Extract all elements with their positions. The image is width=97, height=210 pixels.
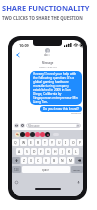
button[interactable]: Back bbox=[14, 51, 22, 59]
staticText: Y bbox=[51, 140, 53, 145]
staticText: X bbox=[30, 158, 32, 163]
button[interactable]: G bbox=[45, 148, 51, 155]
button[interactable]: T bbox=[42, 139, 48, 146]
button[interactable]: W bbox=[20, 139, 27, 146]
staticText: G bbox=[47, 149, 50, 154]
staticText: M bbox=[69, 158, 73, 163]
button[interactable]: Backspace bbox=[75, 157, 83, 164]
button[interactable]: App bbox=[20, 132, 25, 137]
staticText: A bbox=[18, 149, 21, 154]
staticText: U bbox=[58, 140, 61, 145]
button[interactable]: App store bbox=[20, 123, 25, 128]
staticText: K bbox=[68, 149, 71, 154]
button[interactable]: K bbox=[66, 148, 72, 155]
staticText: SHARE FUNCTIONALITY bbox=[2, 3, 90, 13]
button[interactable]: App bbox=[40, 132, 45, 137]
button[interactable]: R bbox=[35, 139, 41, 146]
staticText: TWO CLICKS TO SHARE THE QUESTION bbox=[2, 15, 83, 21]
button[interactable]: App bbox=[30, 132, 35, 137]
button[interactable]: X bbox=[28, 157, 34, 164]
staticText: J bbox=[62, 149, 63, 154]
button[interactable]: V bbox=[43, 157, 50, 164]
button[interactable]: App bbox=[45, 132, 50, 137]
button[interactable]: B bbox=[51, 157, 58, 164]
staticText: L bbox=[75, 149, 77, 154]
button[interactable]: Message bbox=[26, 123, 81, 128]
button[interactable]: Emoji bbox=[14, 180, 19, 185]
button[interactable]: J bbox=[59, 148, 65, 155]
staticText: Message bbox=[42, 61, 54, 65]
staticText: 123 bbox=[14, 168, 19, 172]
button[interactable]: A bbox=[16, 148, 23, 155]
staticText: W bbox=[22, 140, 26, 145]
staticText: T bbox=[44, 140, 46, 145]
staticText: abc › bbox=[44, 53, 51, 57]
button[interactable]: Q bbox=[12, 139, 19, 146]
button[interactable]: N bbox=[59, 157, 66, 164]
staticText: Message bbox=[28, 124, 40, 128]
staticText: P bbox=[79, 140, 82, 145]
button[interactable]: S bbox=[24, 148, 30, 155]
staticText: D bbox=[33, 149, 36, 154]
button[interactable]: Dictation bbox=[76, 180, 81, 185]
staticText: return bbox=[73, 168, 81, 171]
button[interactable]: O bbox=[70, 139, 76, 146]
button[interactable]: space bbox=[22, 166, 70, 173]
button[interactable]: E bbox=[28, 139, 34, 146]
button[interactable]: Camera bbox=[14, 123, 19, 128]
staticText: N bbox=[61, 158, 64, 163]
button[interactable]: U bbox=[56, 139, 62, 146]
staticText: E bbox=[30, 140, 32, 145]
button[interactable]: C bbox=[35, 157, 42, 164]
button[interactable]: return bbox=[71, 166, 83, 173]
staticText: space bbox=[42, 168, 50, 172]
button[interactable]: App bbox=[35, 132, 40, 137]
staticText: Z bbox=[23, 158, 25, 163]
button[interactable]: Send bbox=[76, 124, 80, 128]
button[interactable]: P bbox=[77, 139, 83, 146]
staticText: R bbox=[37, 140, 40, 145]
staticText: 10:09 bbox=[19, 43, 29, 48]
button[interactable]: Contact bbox=[45, 48, 50, 53]
staticText: H bbox=[54, 149, 57, 154]
button[interactable]: I bbox=[63, 139, 69, 146]
button[interactable]: L bbox=[73, 148, 79, 155]
staticText: Today 10:09 AM bbox=[39, 65, 57, 68]
button[interactable]: Y bbox=[49, 139, 55, 146]
staticText: Do you know this brand? bbox=[43, 107, 79, 111]
staticText: Heeeey! I need your help with the follow… bbox=[33, 72, 79, 104]
button[interactable]: App bbox=[15, 132, 20, 137]
staticText: O bbox=[72, 140, 75, 145]
button[interactable]: 123 bbox=[12, 166, 21, 173]
staticText: I bbox=[65, 140, 67, 145]
button[interactable]: Z bbox=[21, 157, 27, 164]
button[interactable]: App bbox=[25, 132, 30, 137]
staticText: F bbox=[40, 149, 42, 154]
staticText: Delivered bbox=[71, 112, 81, 115]
button[interactable]: Shift bbox=[12, 157, 20, 164]
button[interactable]: More apps bbox=[53, 133, 59, 136]
button[interactable]: H bbox=[52, 148, 58, 155]
staticText: S bbox=[26, 149, 28, 154]
button[interactable]: D bbox=[31, 148, 37, 155]
button[interactable]: F bbox=[38, 148, 44, 155]
staticText: C bbox=[37, 158, 40, 163]
button[interactable]: M bbox=[67, 157, 74, 164]
staticText: Q bbox=[14, 140, 17, 145]
staticText: B bbox=[53, 158, 56, 163]
staticText: V bbox=[45, 158, 48, 163]
